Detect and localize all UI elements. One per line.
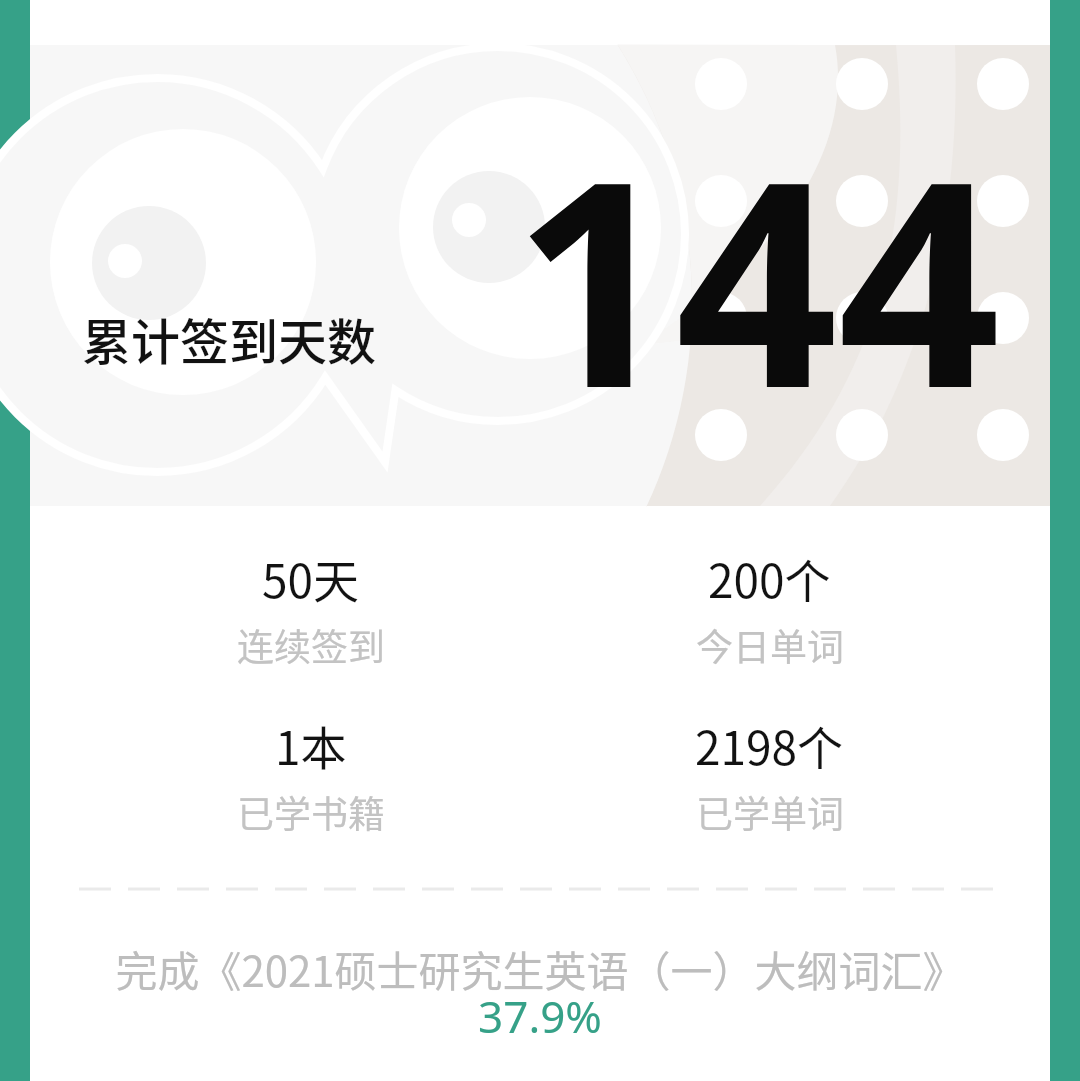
- staticText: 144: [513, 83, 1001, 470]
- staticText: 完成《2021硕士研究生英语（一）大纲词汇》: [115, 938, 965, 999]
- staticText: 累计签到天数: [82, 303, 377, 374]
- staticText: 50天: [262, 545, 360, 612]
- staticText: 200个: [708, 545, 831, 612]
- staticText: 连续签到: [237, 618, 385, 672]
- button[interactable]: 200个: [540, 545, 999, 672]
- staticText: 今日单词: [696, 618, 844, 672]
- button[interactable]: 1本: [81, 712, 540, 839]
- staticText: 1本: [275, 712, 347, 779]
- button[interactable]: 50天: [81, 545, 540, 672]
- staticText: 2198个: [695, 712, 844, 779]
- button[interactable]: 2198个: [540, 712, 999, 839]
- staticText: 37.9%: [478, 986, 602, 1046]
- staticText: 已学单词: [696, 785, 844, 839]
- staticText: 已学书籍: [237, 785, 385, 839]
